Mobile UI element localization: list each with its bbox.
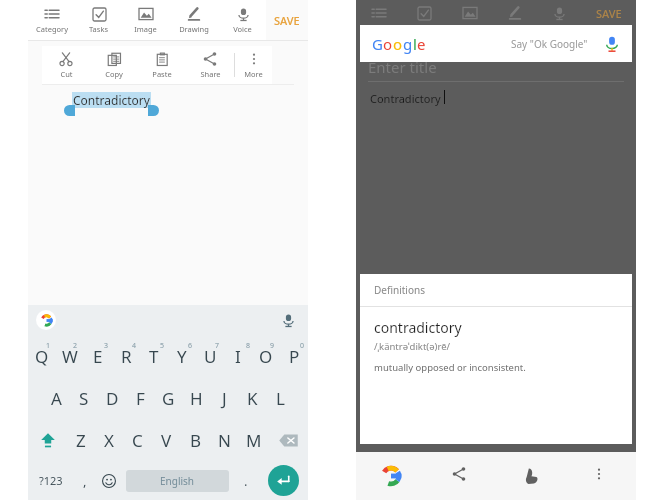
button[interactable]: L (266, 377, 294, 419)
staticText: Z (76, 429, 86, 452)
staticText: mutually opposed or inconsistent. (374, 361, 526, 374)
button[interactable]: Google (356, 452, 426, 500)
staticText: G (372, 34, 383, 54)
button[interactable]: Voice (219, 0, 266, 40)
staticText: Contradictory (370, 91, 441, 106)
button[interactable]: S (70, 377, 98, 419)
staticText: Q (35, 345, 49, 368)
button[interactable]: Image (122, 0, 169, 40)
staticText: B (190, 429, 202, 452)
button[interactable]: SAVE (266, 0, 308, 40)
button[interactable]: G (154, 377, 182, 419)
staticText: N (218, 429, 231, 452)
button[interactable]: English (126, 470, 229, 492)
button[interactable]: More (235, 46, 272, 84)
button[interactable]: Backspace (268, 419, 308, 461)
button[interactable]: Drawing (169, 0, 219, 40)
button[interactable]: SAVE (582, 0, 636, 26)
button[interactable]: Share (426, 452, 496, 500)
button[interactable]: J (210, 377, 238, 419)
staticText: Say "Ok Google" (511, 37, 588, 51)
staticText: o (383, 34, 393, 54)
button[interactable]: M (239, 419, 268, 461)
button[interactable]: Paste (138, 46, 186, 84)
staticText: 8 (246, 341, 251, 351)
staticText: 6 (188, 341, 193, 351)
button[interactable]: Emoji (96, 461, 122, 500)
button[interactable]: Tasks (75, 0, 122, 40)
button[interactable]: U (196, 335, 224, 377)
staticText: Image (134, 24, 157, 34)
staticText: 9 (270, 341, 275, 351)
staticText: J (222, 387, 227, 410)
button[interactable]: F (126, 377, 154, 419)
staticText: Definitions (374, 283, 425, 297)
button[interactable]: Copy (90, 46, 138, 84)
button[interactable]: Google (36, 310, 56, 330)
staticText: contradictory (374, 318, 462, 337)
button[interactable]: Shift (28, 419, 67, 461)
staticText: S (79, 387, 89, 410)
button[interactable]: Share (186, 46, 234, 84)
button[interactable]: V (152, 419, 181, 461)
staticText: M (246, 429, 262, 452)
staticText: F (136, 387, 145, 410)
button[interactable]: Category (356, 0, 402, 26)
staticText: Paste (152, 69, 172, 79)
staticText: 3 (104, 341, 109, 351)
button[interactable]: B (181, 419, 210, 461)
staticText: L (276, 387, 285, 410)
staticText: W (62, 345, 78, 368)
button[interactable]: , (73, 461, 96, 500)
button[interactable]: Cut (42, 46, 90, 84)
button[interactable]: D (98, 377, 126, 419)
button[interactable]: Enter (259, 461, 308, 500)
button[interactable]: Tasks (402, 0, 447, 26)
button[interactable]: W (56, 335, 84, 377)
button[interactable]: N (210, 419, 239, 461)
staticText: /ˌkäntrəˈdikt(ə)rē/ (374, 340, 451, 353)
button[interactable]: Z (67, 419, 95, 461)
button[interactable]: H (182, 377, 210, 419)
button[interactable]: A (42, 377, 70, 419)
button[interactable]: Y (168, 335, 196, 377)
staticText: 0 (300, 341, 305, 351)
button[interactable]: Category (28, 0, 75, 40)
staticText: Cut (60, 69, 73, 79)
staticText: K (247, 387, 258, 410)
button[interactable]: Voice input (278, 310, 298, 330)
button[interactable]: Drawing (492, 0, 537, 26)
button[interactable]: X (95, 419, 123, 461)
staticText: Contradictory (73, 92, 150, 108)
button[interactable]: E (84, 335, 112, 377)
button[interactable]: O (252, 335, 280, 377)
button[interactable]: K (238, 377, 266, 419)
staticText: V (161, 429, 172, 452)
staticText: H (190, 387, 203, 410)
button[interactable]: T (140, 335, 168, 377)
button[interactable]: G (360, 25, 632, 62)
staticText: More (244, 69, 263, 79)
staticText: 7 (215, 341, 220, 351)
button[interactable]: . (233, 461, 259, 500)
staticText: Drawing (179, 24, 209, 34)
staticText: Tasks (89, 24, 108, 34)
button[interactable]: Voice (537, 0, 582, 26)
button[interactable]: C (123, 419, 152, 461)
button[interactable]: I (224, 335, 252, 377)
button[interactable]: P (280, 335, 308, 377)
other: Voice search (604, 36, 620, 52)
staticText: SAVE (274, 13, 300, 28)
staticText: . (244, 472, 248, 490)
button[interactable]: More options (566, 452, 636, 500)
button[interactable]: Touch to search (496, 452, 566, 500)
staticText: SAVE (596, 6, 622, 21)
button[interactable]: Image (447, 0, 492, 26)
button[interactable]: R (112, 335, 140, 377)
staticText: C (132, 429, 143, 452)
button[interactable]: ?123 (28, 461, 73, 500)
staticText: 4 (132, 341, 137, 351)
button[interactable]: Q (28, 335, 56, 377)
staticText: Y (177, 345, 187, 368)
staticText: Category (36, 24, 68, 34)
